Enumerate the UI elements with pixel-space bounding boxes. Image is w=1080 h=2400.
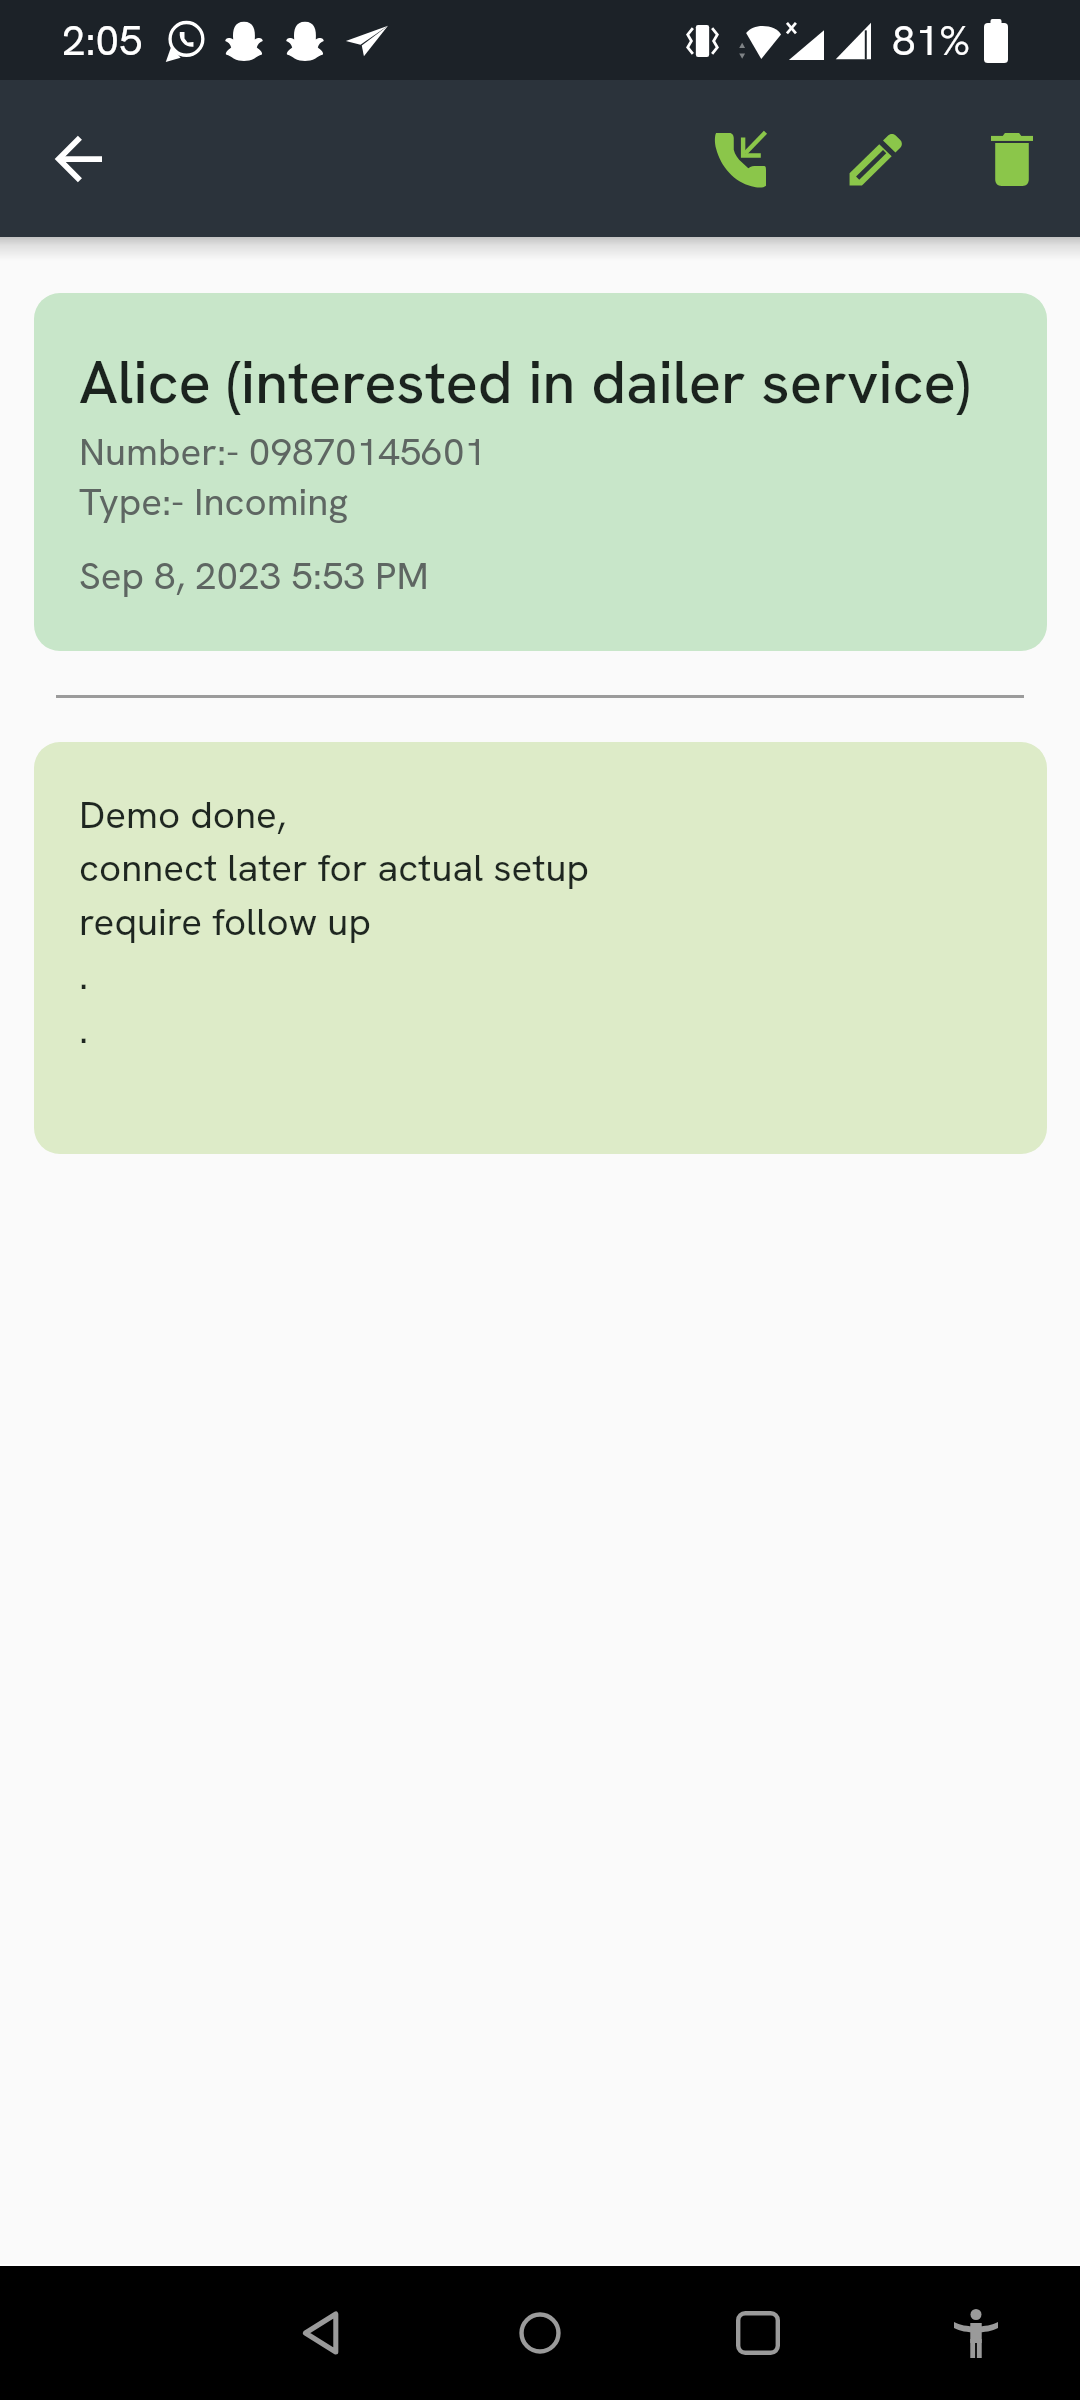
button[interactable]: Call [672,91,808,227]
button[interactable]: Delete [944,91,1080,227]
button[interactable]: Demo done, connect later for actual setu… [34,742,1047,1154]
button[interactable]: Navigate up [23,103,135,215]
staticText: Number:- 09870145601 [79,426,487,476]
staticText: Alice (interested in dailer service) [79,343,971,421]
button[interactable]: Edit [808,91,944,227]
button[interactable]: Back [267,2278,377,2388]
button[interactable]: Recent apps [703,2278,813,2388]
staticText: 2:05 [62,13,143,68]
button[interactable]: Home [485,2278,595,2388]
staticText: Type:- Incoming [79,476,349,526]
button[interactable]: Alice (interested in dailer service) [34,293,1047,651]
staticText: Demo done, connect later for actual setu… [79,789,590,1055]
staticText: 81% [892,13,971,68]
staticText: Sep 8, 2023 5:53 PM [79,550,429,600]
button[interactable]: Accessibility [921,2278,1031,2388]
